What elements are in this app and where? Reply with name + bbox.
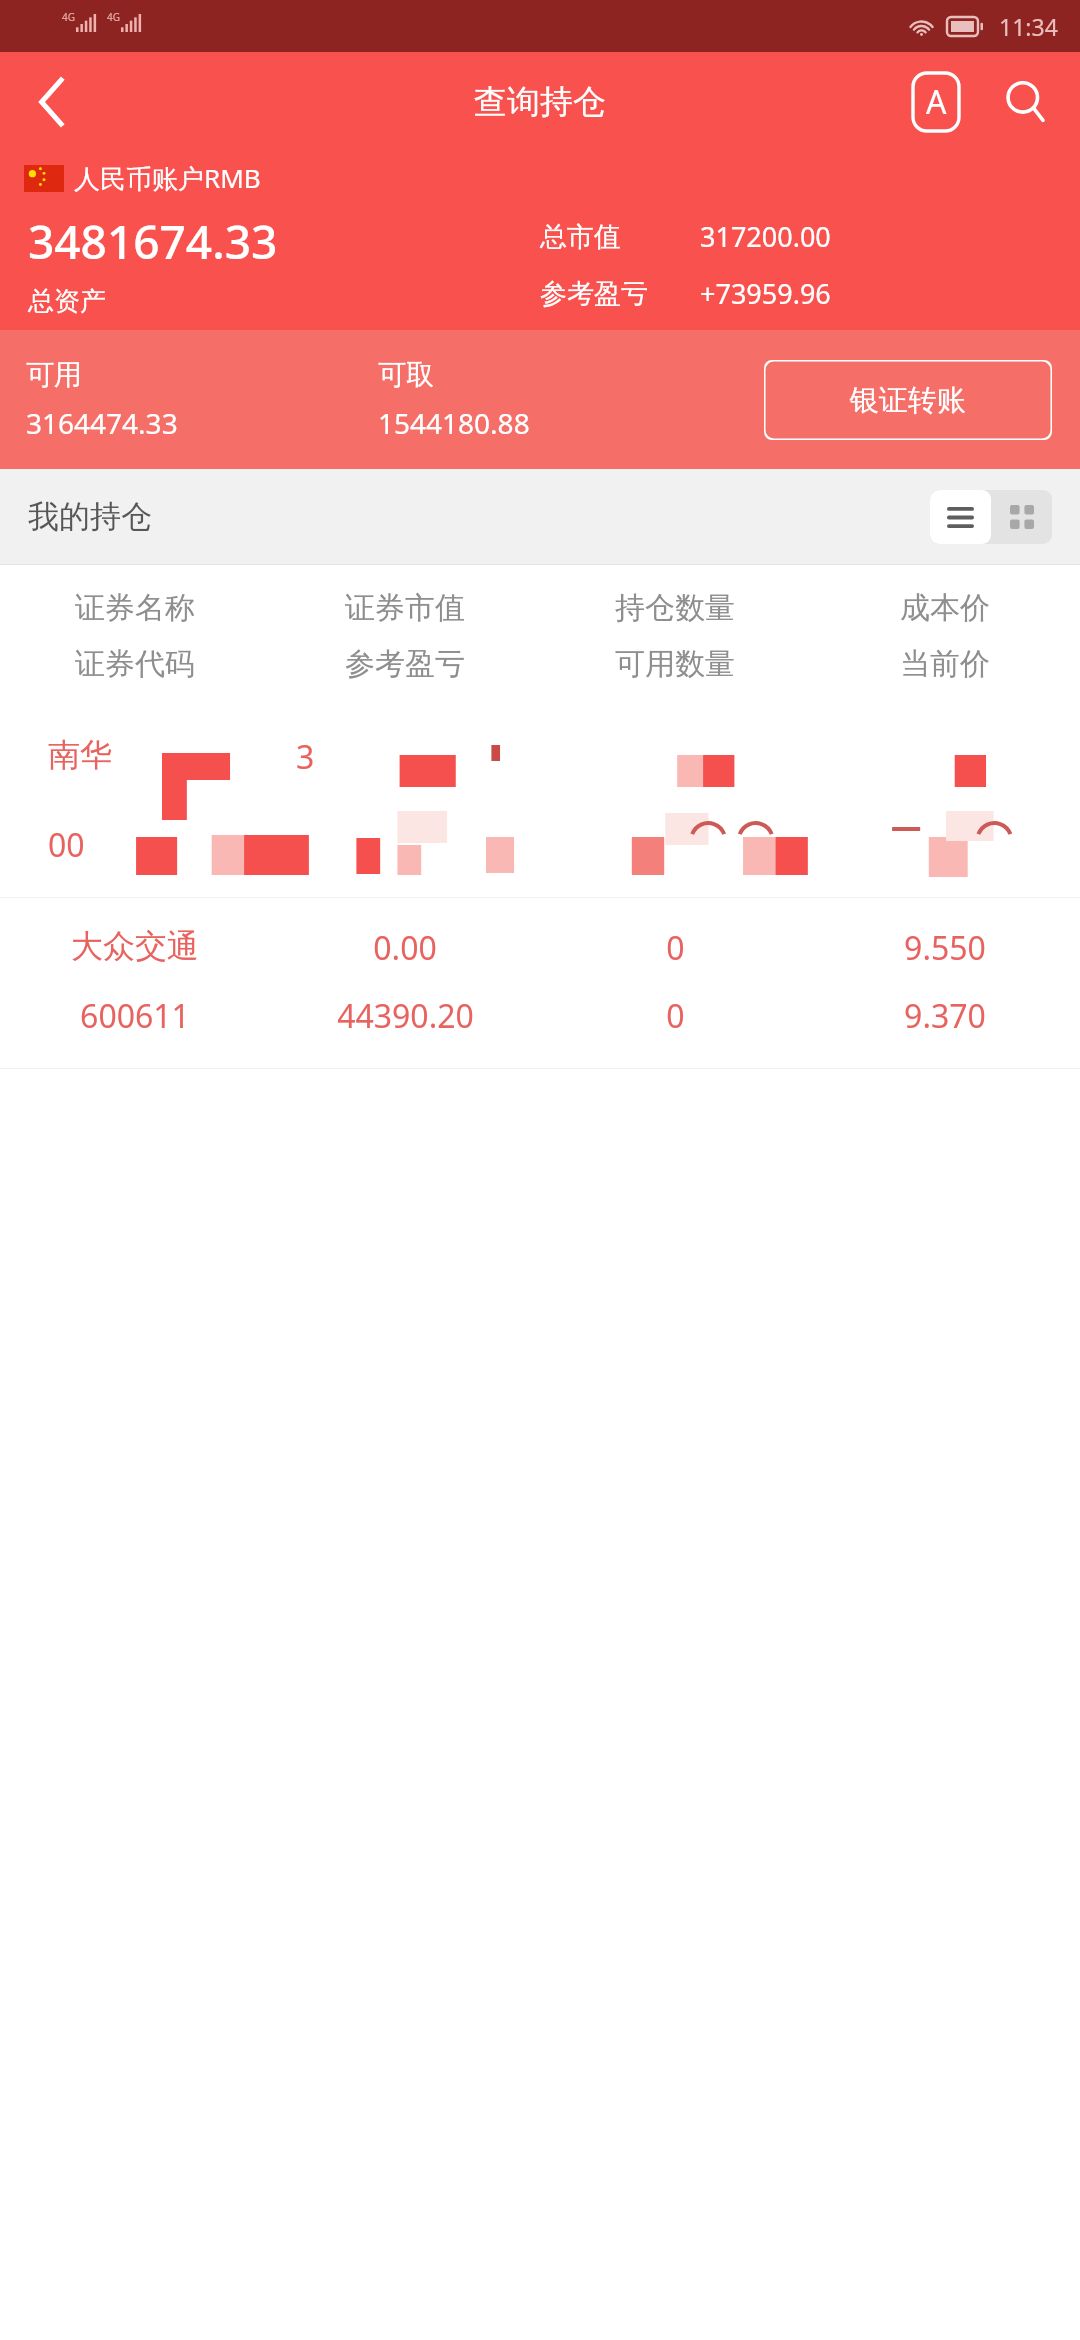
staticText: +73959.96 xyxy=(700,275,831,312)
staticText: 持仓数量 xyxy=(615,589,735,627)
staticText: 11:34 xyxy=(999,11,1058,42)
staticText: 成本价 xyxy=(900,589,990,627)
staticText: 0 xyxy=(666,926,685,970)
staticText: 3164474.33 xyxy=(26,404,178,442)
staticText: 大众交通 xyxy=(71,926,199,966)
staticText: 我的持仓 xyxy=(28,497,152,536)
staticText: 00 xyxy=(48,823,85,867)
staticText: 可用 xyxy=(26,357,82,392)
staticText: 9.550 xyxy=(904,926,986,970)
staticText: 4G xyxy=(62,10,75,24)
staticText: 3481674.33 xyxy=(28,210,278,273)
staticText: 4G xyxy=(107,10,120,24)
staticText: 1544180.88 xyxy=(378,404,530,442)
staticText: 参考盈亏 xyxy=(540,277,648,311)
button[interactable]: List view xyxy=(930,490,991,544)
button[interactable]: Search xyxy=(990,66,1062,138)
staticText: 总资产 xyxy=(28,285,106,318)
staticText: 当前价 xyxy=(900,645,990,683)
button[interactable]: Back xyxy=(16,66,88,138)
staticText: 44390.20 xyxy=(337,994,474,1038)
staticText: 证券代码 xyxy=(75,645,195,683)
staticText: 证券名称 xyxy=(75,589,195,627)
staticText: 参考盈亏 xyxy=(345,645,465,683)
staticText: 可用数量 xyxy=(615,645,735,683)
staticText: 总市值 xyxy=(540,220,621,254)
button[interactable]: 银证转账 xyxy=(764,360,1052,440)
button[interactable]: 南华 xyxy=(0,705,1080,897)
staticText: 317200.00 xyxy=(700,218,831,255)
staticText: 可取 xyxy=(378,357,434,392)
staticText: 查询持仓 xyxy=(474,81,606,123)
staticText: 9.370 xyxy=(904,994,986,1038)
staticText: 0.00 xyxy=(373,926,437,970)
staticText: 3 xyxy=(296,735,315,779)
button[interactable]: Grid view xyxy=(991,490,1052,544)
button[interactable]: 大众交通 xyxy=(0,898,1080,1068)
staticText: 0 xyxy=(666,994,685,1038)
staticText: 银证转账 xyxy=(850,382,966,419)
staticText: 南华 xyxy=(48,735,112,775)
staticText: 人民币账户RMB xyxy=(74,160,261,196)
button[interactable]: Font size xyxy=(900,66,972,138)
staticText: 600611 xyxy=(80,994,190,1038)
staticText: A xyxy=(926,80,947,124)
staticText: 证券市值 xyxy=(345,589,465,627)
